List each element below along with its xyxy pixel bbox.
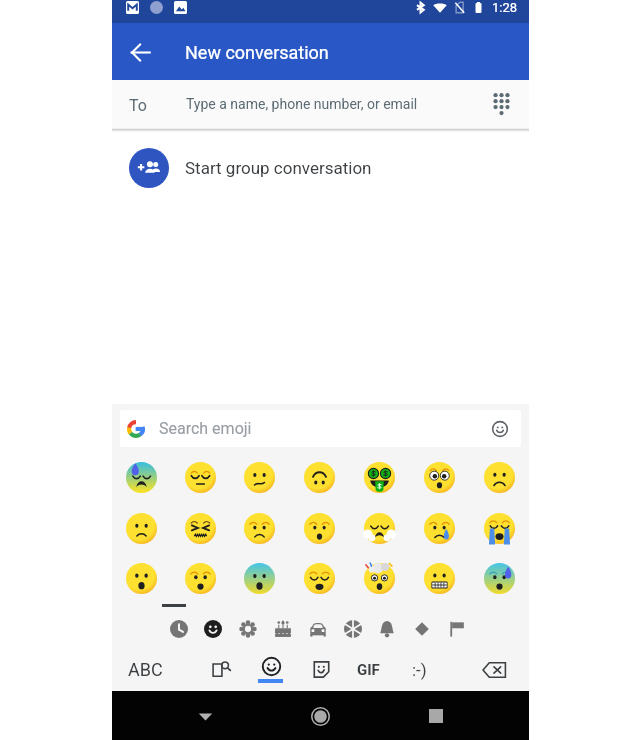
staticText: :-) bbox=[412, 660, 427, 680]
button[interactable]: GIF bbox=[346, 648, 390, 691]
button[interactable]: Emoji bbox=[289, 452, 349, 503]
button[interactable]: Emoji bbox=[171, 503, 230, 553]
staticText: New conversation bbox=[185, 42, 329, 63]
button[interactable]: Back bbox=[183, 694, 227, 738]
staticText: 1:28 bbox=[492, 0, 518, 15]
button[interactable]: Stickers bbox=[299, 648, 343, 691]
button[interactable]: Emoji bbox=[230, 452, 289, 503]
button[interactable]: Food bbox=[265, 611, 300, 646]
button[interactable]: Recent apps bbox=[414, 694, 458, 738]
button[interactable]: Search stickers bbox=[199, 648, 243, 691]
button[interactable]: Start group conversation bbox=[112, 132, 529, 203]
staticText: GIF bbox=[357, 661, 380, 679]
button[interactable]: Emoji bbox=[349, 452, 409, 503]
button[interactable]: Emoji bbox=[349, 503, 409, 553]
staticText: Type a name, phone number, or email bbox=[186, 96, 418, 112]
button[interactable]: Smileys bbox=[195, 611, 230, 646]
button[interactable]: Emoji bbox=[112, 553, 171, 603]
staticText: ABC bbox=[128, 659, 163, 680]
button[interactable]: Emoji bbox=[469, 553, 529, 603]
button[interactable]: Emoji bbox=[249, 648, 293, 691]
button[interactable]: Emoji bbox=[349, 553, 409, 603]
button[interactable]: Objects bbox=[369, 611, 404, 646]
button[interactable]: Travel bbox=[300, 611, 335, 646]
button[interactable]: Dialpad bbox=[481, 84, 521, 124]
button[interactable]: Backspace bbox=[473, 648, 517, 691]
button[interactable]: Emoji bbox=[409, 553, 469, 603]
button[interactable]: Recent bbox=[161, 611, 196, 646]
button[interactable]: Emoji picker bbox=[488, 417, 512, 441]
button[interactable]: ABC bbox=[117, 648, 173, 691]
button[interactable]: Emoji bbox=[409, 503, 469, 553]
button[interactable]: Emoji bbox=[112, 503, 171, 553]
button[interactable]: Emoji bbox=[469, 503, 529, 553]
button[interactable]: Nature bbox=[230, 611, 265, 646]
button[interactable]: Emoji bbox=[112, 452, 171, 503]
button[interactable]: Emoji bbox=[171, 553, 230, 603]
button[interactable]: Emoji bbox=[409, 452, 469, 503]
staticText: Search emoji bbox=[159, 419, 252, 438]
button[interactable]: Flags bbox=[439, 611, 474, 646]
button[interactable]: Symbols bbox=[404, 611, 439, 646]
button[interactable]: :-) bbox=[397, 648, 441, 691]
button[interactable]: Emoji bbox=[289, 503, 349, 553]
button[interactable]: Search emoji bbox=[120, 410, 521, 447]
button[interactable]: Activities bbox=[335, 611, 370, 646]
staticText: To bbox=[129, 96, 147, 115]
staticText: Start group conversation bbox=[185, 158, 372, 178]
button[interactable]: Emoji bbox=[171, 452, 230, 503]
button[interactable]: Back bbox=[116, 28, 164, 76]
button[interactable]: Emoji bbox=[230, 553, 289, 603]
button[interactable]: Home bbox=[298, 694, 342, 738]
button[interactable]: Emoji bbox=[289, 553, 349, 603]
button[interactable]: Emoji bbox=[230, 503, 289, 553]
button[interactable]: Emoji bbox=[469, 452, 529, 503]
